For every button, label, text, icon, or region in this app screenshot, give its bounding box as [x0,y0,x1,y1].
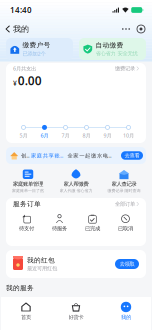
button[interactable]: 家人帮缴费 [52,168,100,194]
staticText: 家庭账单管理 [13,181,43,187]
staticText: 首页 [21,314,31,320]
staticText: 已取消 [118,225,133,232]
staticText: 缴费记录 [115,65,135,72]
staticText: 5月 [19,132,27,139]
staticText: 家人代缴 省心省力 [59,188,92,193]
staticText: 9月 [103,132,111,139]
staticText: 全家一起缴水电费 [64,152,113,159]
staticText: 待服务 [52,225,67,232]
staticText: 已添加2个 [23,50,46,57]
button[interactable]: 全部订单 [115,201,139,207]
button[interactable]: 已完成 [76,214,109,232]
staticText: 缴费记录 随时查询 [107,188,140,193]
staticText: 我的 [13,24,29,34]
staticText: 家庭共享账户 [31,152,64,159]
staticText: 省心省力 安全无忧 [96,50,138,57]
button[interactable]: 自动缴费 [79,38,146,60]
staticText: 我的服务 [6,284,34,292]
button[interactable]: 我的红包 [6,250,146,278]
staticText: 6月共支出 [13,65,36,72]
button[interactable]: 我的 [0,20,33,38]
button[interactable]: 我的 [101,297,151,330]
staticText: 7月 [61,132,69,139]
button[interactable]: 家庭账单管理 [4,168,52,194]
button[interactable]: 缴费记录 [115,65,139,72]
button[interactable]: 家人查记录 [100,168,148,194]
staticText: 全部订单 [115,201,135,207]
button[interactable]: 关闭 [135,20,152,38]
button[interactable]: 待服务 [43,214,76,232]
staticText: 10月 [123,132,134,139]
staticText: 0.00 [18,72,42,88]
staticText: 家庭账单一目了然 [12,188,44,193]
button[interactable]: 创建 [6,147,146,164]
staticText: 缴费户号 [23,41,51,49]
staticText: 6月 [40,132,48,139]
staticText: 去领取 [119,261,134,267]
button[interactable]: 待支付 [10,214,43,232]
staticText: 最近可用红包 [27,265,57,272]
staticText: 已完成 [85,225,100,232]
staticText: 去查看 [124,152,139,159]
staticText: 家人帮缴费 [63,181,88,187]
button[interactable]: 好货卡 [51,297,101,330]
staticText: 8月 [82,132,90,139]
staticText: 14:40 [10,5,32,15]
button[interactable]: 缴费户号 [6,38,73,60]
staticText: 创建 [21,152,31,159]
button[interactable]: 首页 [1,297,51,330]
staticText: 服务订单 [13,200,41,208]
staticText: ¥ [13,79,17,88]
button[interactable]: 更多 [117,20,135,38]
staticText: 好货卡 [68,314,83,320]
staticText: 我的 [121,314,131,320]
button[interactable]: 已取消 [109,214,142,232]
staticText: 家人查记录 [111,181,136,187]
staticText: 自动缴费 [96,41,124,49]
staticText: 我的红包 [27,256,55,264]
staticText: 待支付 [19,225,34,232]
